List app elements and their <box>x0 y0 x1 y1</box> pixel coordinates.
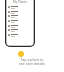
button[interactable]: Tap target <box>18 51 24 57</box>
button[interactable] <box>8 10 22 14</box>
staticText: My Plants <box>5 0 35 4</box>
button[interactable] <box>8 33 22 37</box>
button[interactable] <box>8 14 22 18</box>
staticText: Tap a plant to see care details <box>4 57 60 67</box>
button[interactable] <box>8 24 22 28</box>
button[interactable] <box>8 5 22 9</box>
button[interactable] <box>8 19 22 23</box>
button[interactable] <box>8 28 22 32</box>
